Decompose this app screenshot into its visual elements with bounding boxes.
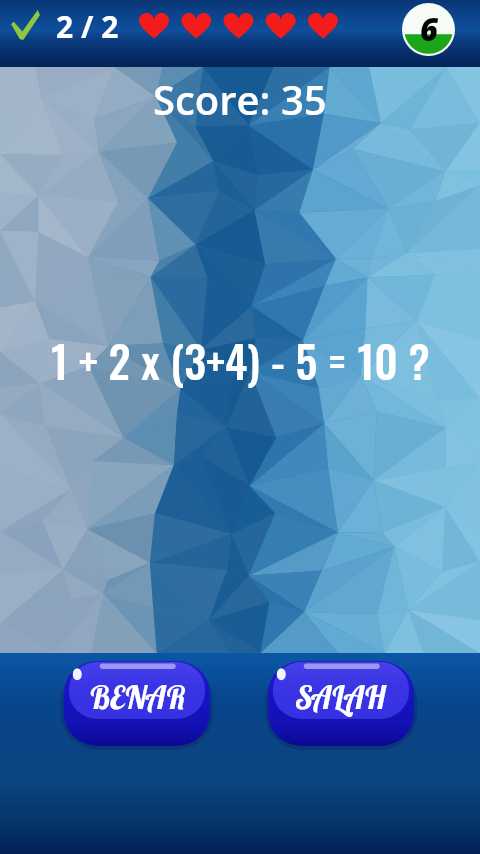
button[interactable]: SALAH — [268, 661, 414, 746]
staticText: 2 / 2 — [56, 6, 119, 47]
other: Timer — [402, 3, 455, 56]
staticText: SALAH — [296, 678, 386, 717]
staticText: Score: 35 — [153, 72, 327, 126]
staticText: 1 + 2 x (3+4) - 5 = 10 ? — [51, 328, 430, 393]
staticText: 6 — [420, 8, 438, 50]
button[interactable]: BENAR — [64, 661, 210, 746]
staticText: BENAR — [89, 678, 186, 717]
